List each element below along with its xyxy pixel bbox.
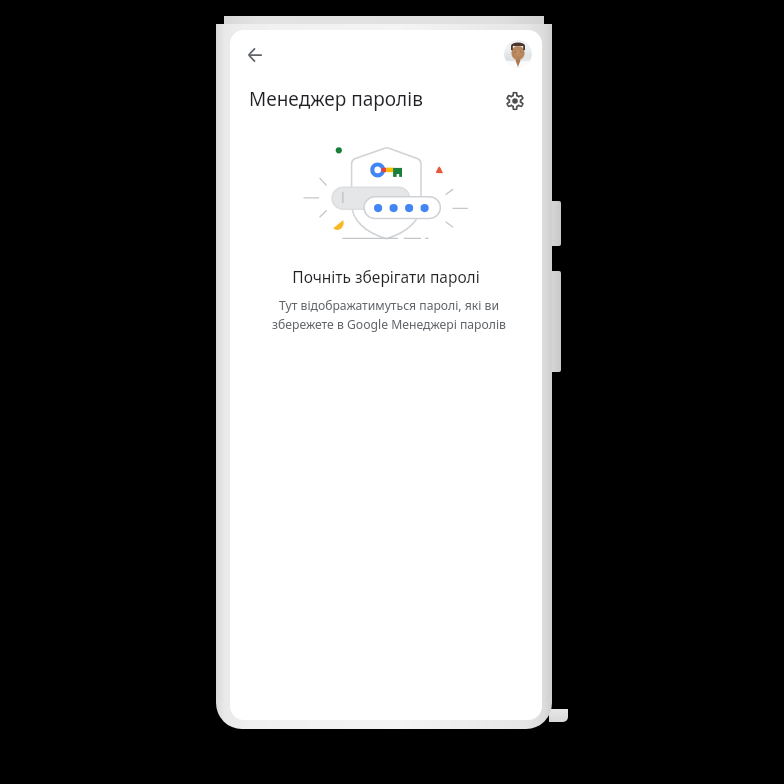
button[interactable]: Back — [234, 34, 274, 74]
staticText: Тут відображатимуться паролі, які ви збе… — [269, 297, 509, 333]
button[interactable]: Settings — [498, 84, 532, 118]
staticText: Почніть зберігати паролі — [292, 266, 480, 287]
staticText: Менеджер паролів — [249, 86, 423, 112]
button[interactable]: Account — [504, 40, 532, 68]
